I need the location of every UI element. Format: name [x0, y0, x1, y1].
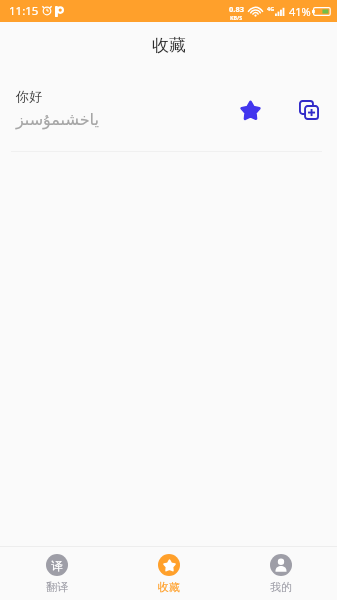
button[interactable]: Copy — [292, 93, 326, 127]
staticText: 我的 — [270, 580, 292, 594]
button[interactable]: 译 — [0, 547, 113, 600]
staticText: 收藏 — [158, 580, 180, 594]
staticText: 41% — [289, 4, 311, 19]
staticText: 0.83 — [229, 4, 244, 14]
staticText: 4G — [267, 5, 275, 12]
staticText: 你好 — [16, 88, 42, 104]
button[interactable]: 你好 — [0, 68, 337, 151]
staticText: KB/S — [230, 14, 243, 21]
button[interactable]: 我的 — [225, 547, 337, 600]
button[interactable]: 收藏 — [113, 547, 225, 600]
staticText: 收藏 — [152, 35, 186, 56]
staticText: 11:15 — [9, 3, 39, 19]
staticText: 翻译 — [46, 580, 68, 594]
staticText: ياخشىمۇسىز — [16, 110, 99, 129]
button[interactable]: Favorite — [233, 93, 267, 127]
staticText: 译 — [51, 558, 63, 573]
